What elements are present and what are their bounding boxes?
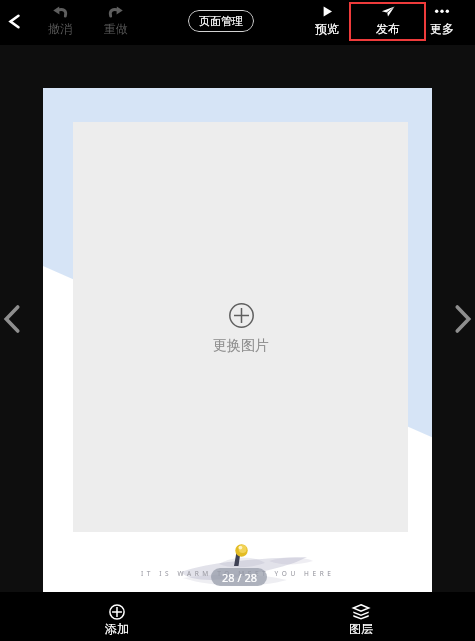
- button[interactable]: 预览: [307, 3, 347, 48]
- staticText: 图层: [349, 621, 373, 636]
- button[interactable]: Previous page: [0, 298, 24, 340]
- staticText: 撤消: [48, 21, 72, 36]
- button[interactable]: Back: [0, 0, 30, 45]
- staticText: 发布: [376, 21, 400, 36]
- button[interactable]: 更换图片: [73, 122, 408, 532]
- button[interactable]: 撤消: [40, 3, 80, 48]
- staticText: 添加: [105, 621, 129, 636]
- button[interactable]: 页面管理: [188, 10, 254, 32]
- button[interactable]: 更多: [421, 3, 463, 48]
- button[interactable]: 重做: [96, 3, 136, 48]
- staticText: 页面管理: [199, 14, 243, 28]
- staticText: 重做: [104, 21, 128, 36]
- staticText: 28 / 28: [222, 570, 257, 585]
- button[interactable]: 图层: [330, 594, 391, 639]
- staticText: 预览: [315, 21, 339, 36]
- button[interactable]: 添加: [86, 594, 147, 639]
- button[interactable]: 发布: [349, 2, 426, 41]
- button[interactable]: Next page: [451, 298, 475, 340]
- button[interactable]: 更换图片: [43, 88, 432, 592]
- staticText: 更多: [430, 21, 454, 36]
- staticText: 更换图片: [213, 337, 269, 355]
- staticText: IT IS WARM TO MEET YOU HERE: [141, 569, 335, 578]
